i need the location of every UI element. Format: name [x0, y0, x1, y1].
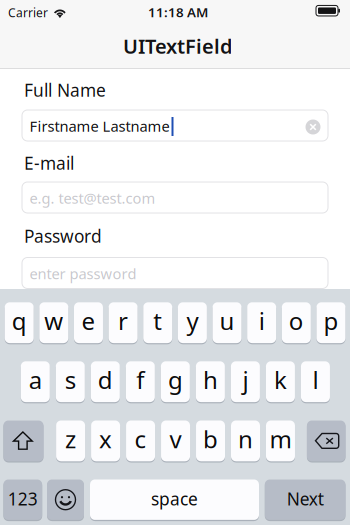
staticText: Carrier [8, 4, 48, 20]
button[interactable]: y [178, 302, 207, 344]
staticText: l [312, 364, 318, 396]
button[interactable]: k [266, 361, 295, 403]
button[interactable]: l [301, 361, 330, 403]
staticText: w [44, 305, 63, 337]
staticText: g [168, 364, 183, 396]
button[interactable]: b [196, 420, 225, 462]
button[interactable]: h [196, 361, 225, 403]
button[interactable]: i [247, 302, 276, 344]
button[interactable]: e [74, 302, 103, 344]
button[interactable]: j [231, 361, 260, 403]
staticText: i [259, 305, 265, 337]
staticText: 11:18 AM [148, 3, 208, 21]
button[interactable]: space [90, 479, 259, 521]
staticText: Firstname Lastname [29, 116, 169, 136]
button[interactable]: q [5, 302, 34, 344]
button[interactable]: s [56, 361, 85, 403]
staticText: u [219, 305, 234, 337]
button[interactable]: 123 [3, 479, 42, 521]
staticText: d [98, 364, 113, 396]
staticText: Full Name [24, 78, 106, 101]
staticText: x [99, 423, 112, 455]
button[interactable]: a [21, 361, 50, 403]
staticText: y [186, 305, 198, 337]
staticText: Next [287, 487, 324, 510]
button[interactable]: Delete [307, 420, 345, 462]
staticText: space [151, 487, 198, 510]
button[interactable]: u [212, 302, 241, 344]
button[interactable]: w [39, 302, 68, 344]
staticText: q [12, 305, 27, 337]
staticText: c [135, 423, 147, 455]
staticText: m [269, 423, 291, 455]
button[interactable]: z [56, 420, 85, 462]
staticText: h [203, 364, 218, 396]
button[interactable]: g [161, 361, 190, 403]
button[interactable]: f [126, 361, 155, 403]
staticText: o [289, 305, 304, 337]
staticText: n [238, 423, 253, 455]
button[interactable]: m [266, 420, 295, 462]
staticText: a [29, 364, 42, 396]
staticText: UITextField [123, 33, 233, 59]
staticText: p [323, 305, 338, 337]
button[interactable]: c [126, 420, 155, 462]
staticText: Password [24, 224, 102, 247]
staticText: E-mail [24, 151, 74, 174]
staticText: v [169, 423, 181, 455]
button[interactable]: n [231, 420, 260, 462]
button[interactable]: Next [265, 479, 345, 521]
button[interactable]: Shift [3, 420, 43, 462]
staticText: e [81, 305, 95, 337]
button[interactable]: r [109, 302, 138, 344]
staticText: e.g. test@test.com [29, 188, 155, 208]
button[interactable]: t [143, 302, 172, 344]
button[interactable]: x [91, 420, 120, 462]
staticText: enter password [29, 264, 136, 283]
staticText: k [274, 364, 287, 396]
staticText: j [242, 364, 248, 396]
staticText: z [65, 423, 76, 455]
staticText: b [203, 423, 218, 455]
button[interactable]: p [316, 302, 345, 344]
staticText: r [118, 305, 128, 337]
button[interactable]: d [91, 361, 120, 403]
button[interactable]: Emoji [47, 479, 84, 521]
button[interactable]: o [282, 302, 311, 344]
button[interactable]: v [161, 420, 190, 462]
staticText: 123 [8, 487, 38, 510]
staticText: t [153, 305, 162, 337]
staticText: s [65, 364, 76, 396]
staticText: f [136, 364, 144, 396]
